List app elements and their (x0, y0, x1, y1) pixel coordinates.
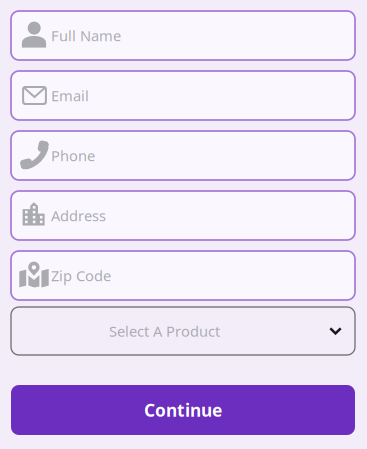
button[interactable]: Continue (11, 385, 355, 435)
staticText: Phone (51, 145, 95, 165)
staticText: Address (51, 205, 106, 225)
button[interactable]: Full Name (11, 11, 355, 60)
button[interactable]: Phone (11, 131, 355, 180)
staticText: Full Name (51, 25, 121, 45)
button[interactable]: Zip Code (11, 251, 355, 300)
staticText: Continue (144, 398, 222, 422)
button[interactable]: Email (11, 71, 355, 120)
staticText: Zip Code (51, 265, 111, 285)
staticText: Email (51, 85, 89, 105)
button[interactable]: Select A Product (11, 307, 355, 355)
button[interactable]: Address (11, 191, 355, 240)
staticText: Select A Product (109, 321, 220, 341)
